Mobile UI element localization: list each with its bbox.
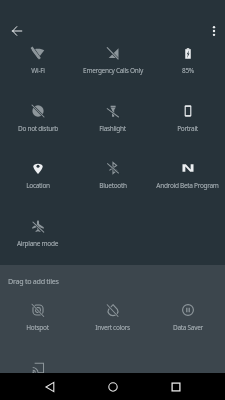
staticText: Android Beta Program <box>156 181 219 190</box>
button[interactable]: Back <box>37 374 63 400</box>
staticText: Data Saver <box>173 323 203 332</box>
button[interactable]: Back <box>5 19 28 42</box>
button[interactable]: Portrait <box>150 99 225 156</box>
button[interactable]: Home <box>100 374 126 400</box>
staticText: Flashlight <box>99 124 126 133</box>
staticText: Airplane mode <box>17 239 58 248</box>
button[interactable]: Hotspot <box>0 298 75 355</box>
staticText: Wi-Fi <box>31 66 45 75</box>
button[interactable]: Android Beta Program <box>150 156 225 213</box>
button[interactable]: Bluetooth <box>75 156 150 213</box>
button[interactable]: More options <box>202 19 225 42</box>
button[interactable]: Do not disturb <box>0 99 75 156</box>
staticText: Portrait <box>177 124 198 133</box>
button[interactable]: Wi-Fi <box>0 41 75 98</box>
button[interactable]: Recents <box>163 374 189 400</box>
button[interactable]: Invert colors <box>75 298 150 355</box>
button[interactable]: 85% <box>150 41 225 98</box>
staticText: Location <box>26 181 50 190</box>
button[interactable]: Emergency Calls Only <box>75 41 150 98</box>
staticText: 85% <box>182 66 194 75</box>
button[interactable]: Flashlight <box>75 99 150 156</box>
staticText: Drag to add tiles <box>8 276 59 286</box>
staticText: Emergency Calls Only <box>83 66 143 75</box>
button[interactable]: Location <box>0 156 75 213</box>
staticText: Do not disturb <box>18 124 58 133</box>
staticText: Invert colors <box>95 323 130 332</box>
staticText: Bluetooth <box>99 181 127 190</box>
staticText: Hotspot <box>26 323 49 332</box>
button[interactable]: Airplane mode <box>0 214 75 271</box>
button[interactable]: Data Saver <box>150 298 225 355</box>
button[interactable] <box>0 356 75 400</box>
